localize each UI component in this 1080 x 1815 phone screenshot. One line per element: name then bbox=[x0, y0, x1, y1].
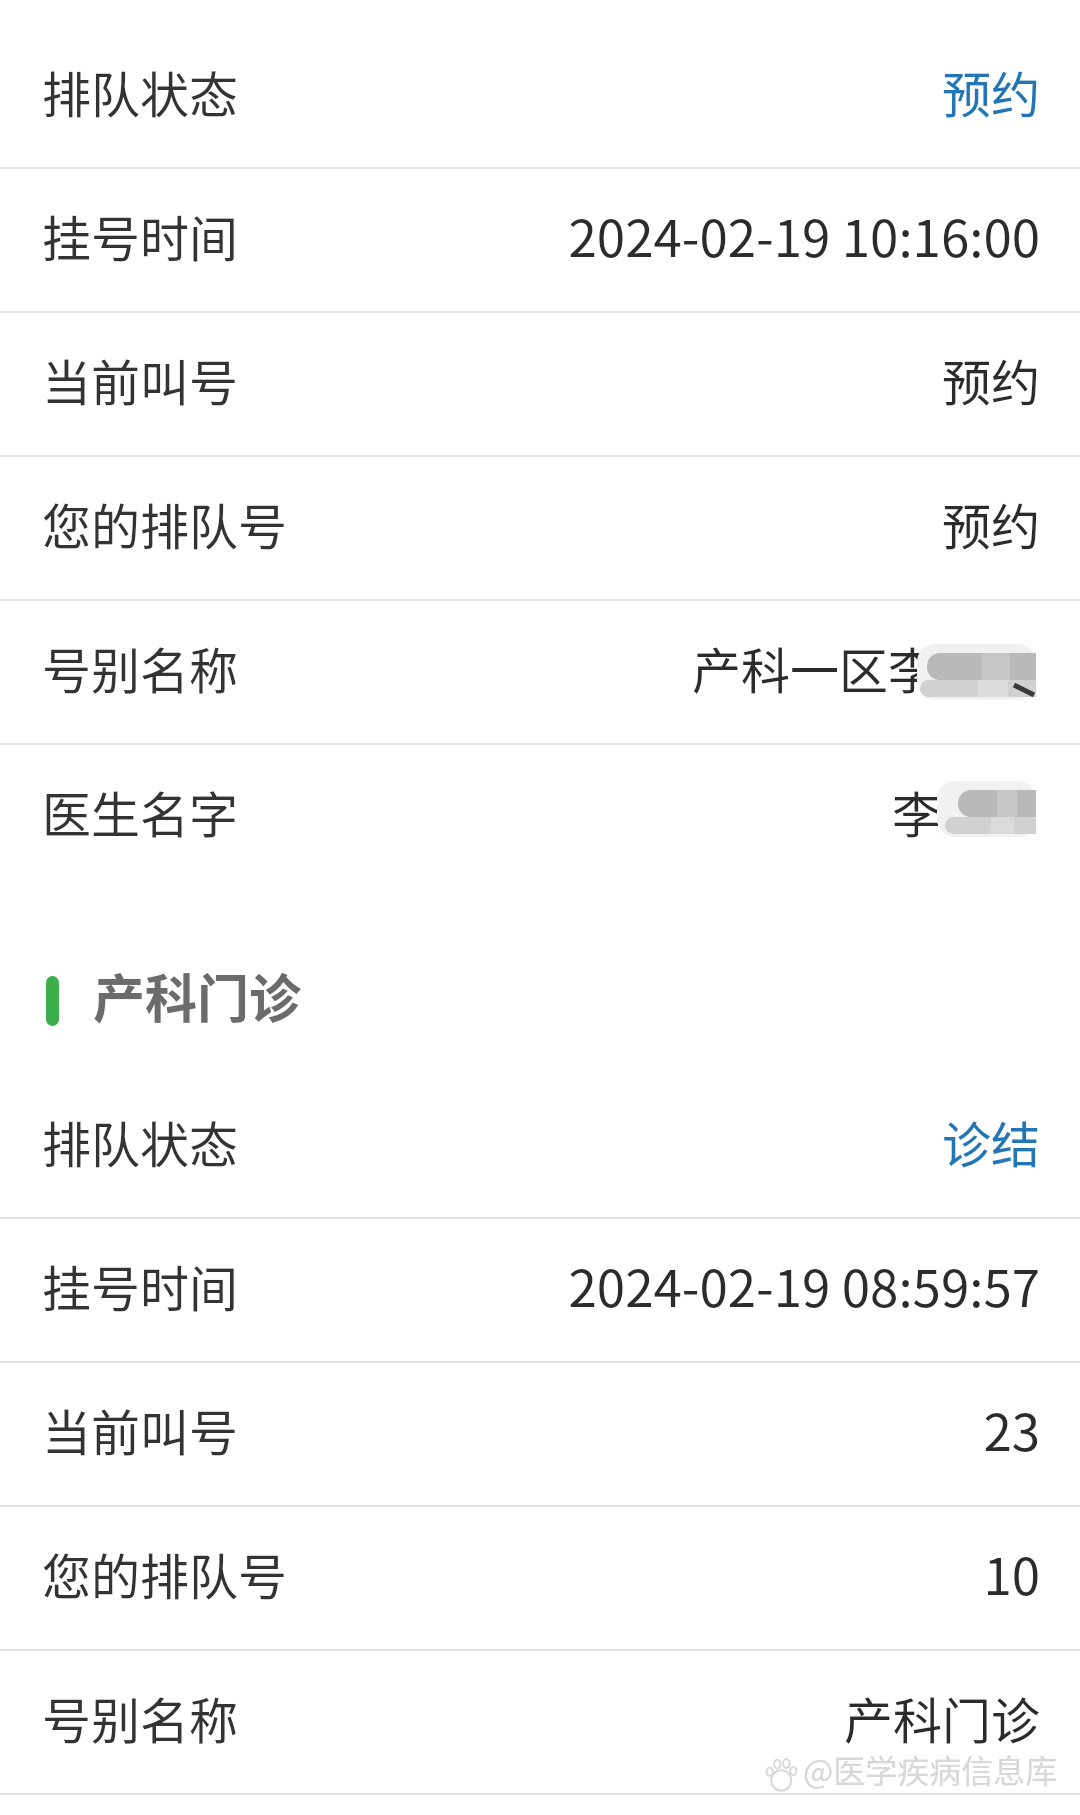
staticText: 10 bbox=[983, 1536, 1040, 1610]
staticText: 李 bbox=[891, 776, 941, 847]
button[interactable]: 医生名字 bbox=[0, 745, 1080, 887]
button[interactable]: 号别名称 bbox=[0, 1651, 1080, 1793]
staticText: 号别名称 bbox=[42, 1682, 239, 1753]
staticText: 排队状态 bbox=[42, 1106, 239, 1177]
staticText: 医生名字 bbox=[42, 776, 239, 847]
staticText: 预约 bbox=[941, 56, 1040, 127]
staticText: 诊结 bbox=[941, 1106, 1040, 1177]
staticText: 您的排队号 bbox=[42, 1538, 288, 1609]
other: Redacted bbox=[937, 781, 1036, 837]
staticText: 产科一区李 bbox=[691, 632, 937, 703]
staticText: 预约 bbox=[941, 344, 1040, 415]
button[interactable]: 当前叫号 bbox=[0, 313, 1080, 455]
staticText: 挂号时间 bbox=[42, 1250, 239, 1321]
staticText: @医学疾病信息库 bbox=[803, 1746, 1058, 1792]
button[interactable]: 排队状态 bbox=[0, 1075, 1080, 1217]
staticText: 当前叫号 bbox=[42, 1394, 239, 1465]
staticText: 产科门诊 bbox=[93, 958, 302, 1033]
other: Watermark logo bbox=[766, 1759, 797, 1792]
staticText: 23 bbox=[983, 1392, 1040, 1466]
button[interactable]: 您的排队号 bbox=[0, 457, 1080, 599]
staticText: 当前叫号 bbox=[42, 344, 239, 415]
button[interactable]: 当前叫号 bbox=[0, 1363, 1080, 1505]
button[interactable]: 您的排队号 bbox=[0, 1507, 1080, 1649]
staticText: 排队状态 bbox=[42, 56, 239, 127]
staticText: 预约 bbox=[941, 488, 1040, 559]
button[interactable]: 挂号时间 bbox=[0, 1219, 1080, 1361]
other: Redacted bbox=[917, 644, 1036, 700]
button[interactable]: 号别名称 bbox=[0, 601, 1080, 743]
staticText: 2024-02-19 08:59:57 bbox=[568, 1248, 1040, 1322]
staticText: 2024-02-19 10:16:00 bbox=[568, 198, 1040, 272]
staticText: 您的排队号 bbox=[42, 488, 288, 559]
staticText: 产科门诊 bbox=[843, 1682, 1040, 1753]
staticText: 号别名称 bbox=[42, 632, 239, 703]
button[interactable]: 挂号时间 bbox=[0, 169, 1080, 311]
button[interactable]: 排队状态 bbox=[0, 25, 1080, 167]
staticText: 挂号时间 bbox=[42, 200, 239, 271]
